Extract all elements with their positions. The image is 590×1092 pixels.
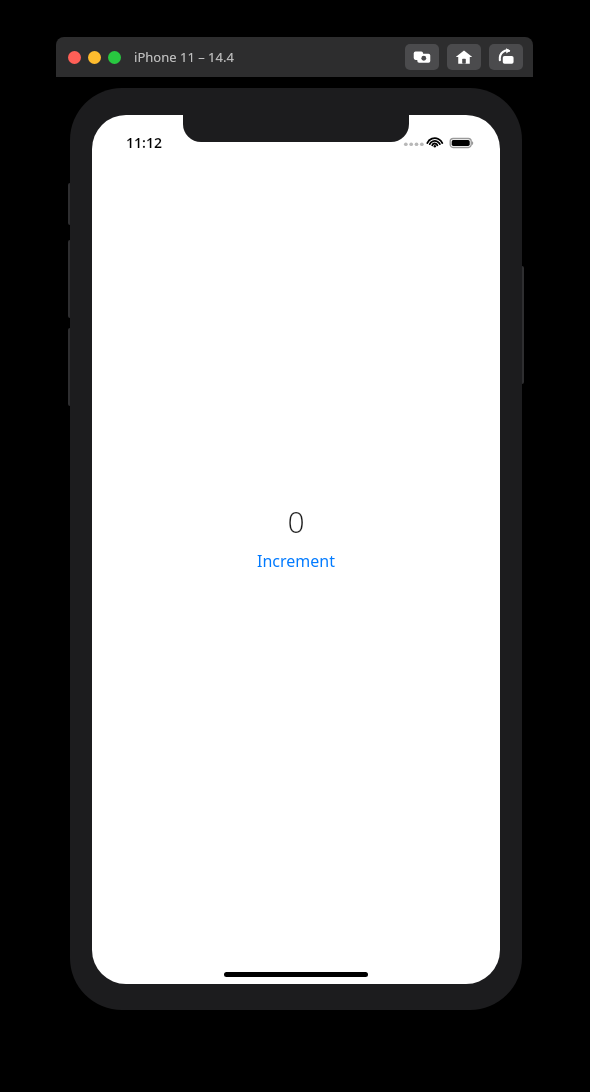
button[interactable]: Home [447, 44, 481, 70]
staticText: 0 [287, 501, 305, 542]
staticText: 11:12 [126, 133, 162, 152]
button[interactable]: Share [489, 44, 523, 70]
staticText: iPhone 11 – 14.4 [134, 48, 234, 66]
button[interactable]: Increment [251, 548, 341, 574]
button[interactable]: Close [68, 51, 81, 64]
button[interactable]: Zoom [108, 51, 121, 64]
button[interactable]: Screenshot [405, 44, 439, 70]
staticText: Increment [257, 550, 335, 572]
button[interactable]: Minimize [88, 51, 101, 64]
